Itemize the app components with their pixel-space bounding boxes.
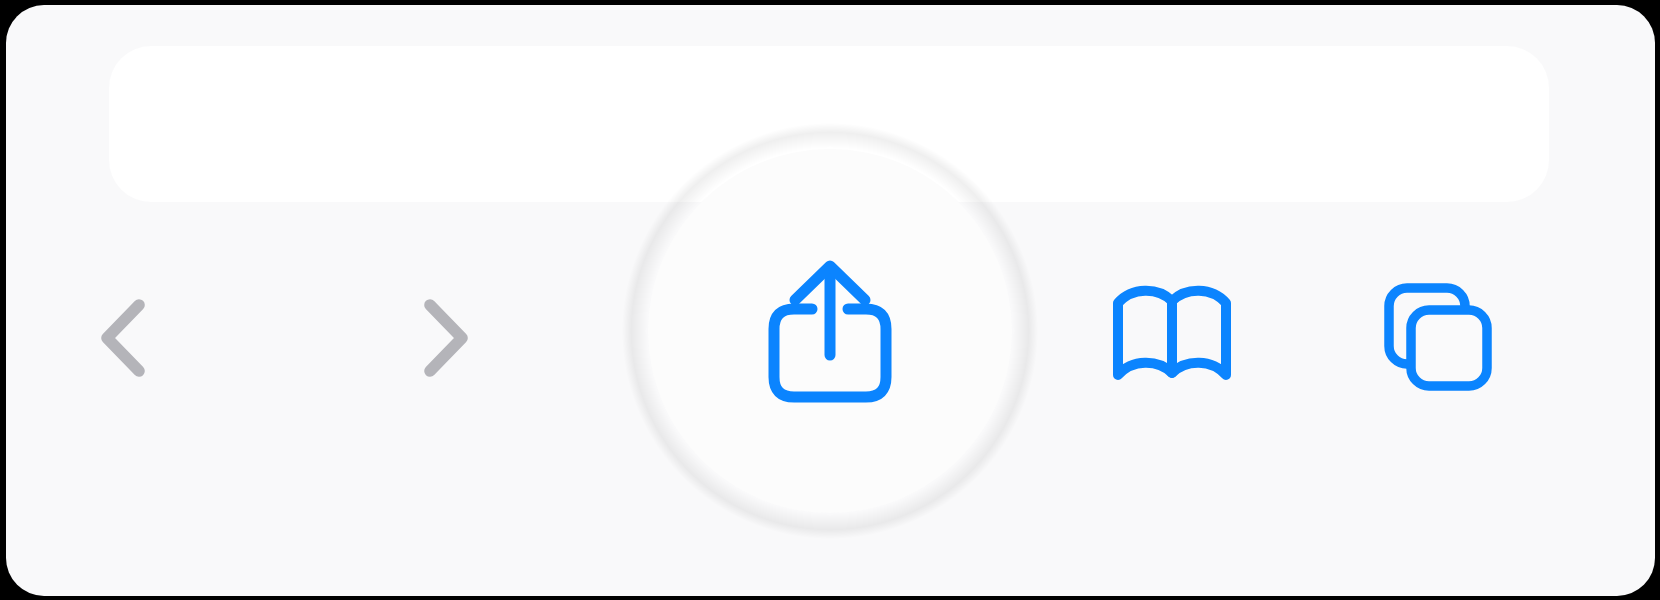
button[interactable]: Bookmarks [1107, 270, 1237, 400]
button[interactable]: Share [648, 149, 1012, 513]
button[interactable]: Forward [385, 270, 515, 400]
button[interactable]: Back [60, 270, 190, 400]
button[interactable]: Tabs [1373, 270, 1503, 400]
